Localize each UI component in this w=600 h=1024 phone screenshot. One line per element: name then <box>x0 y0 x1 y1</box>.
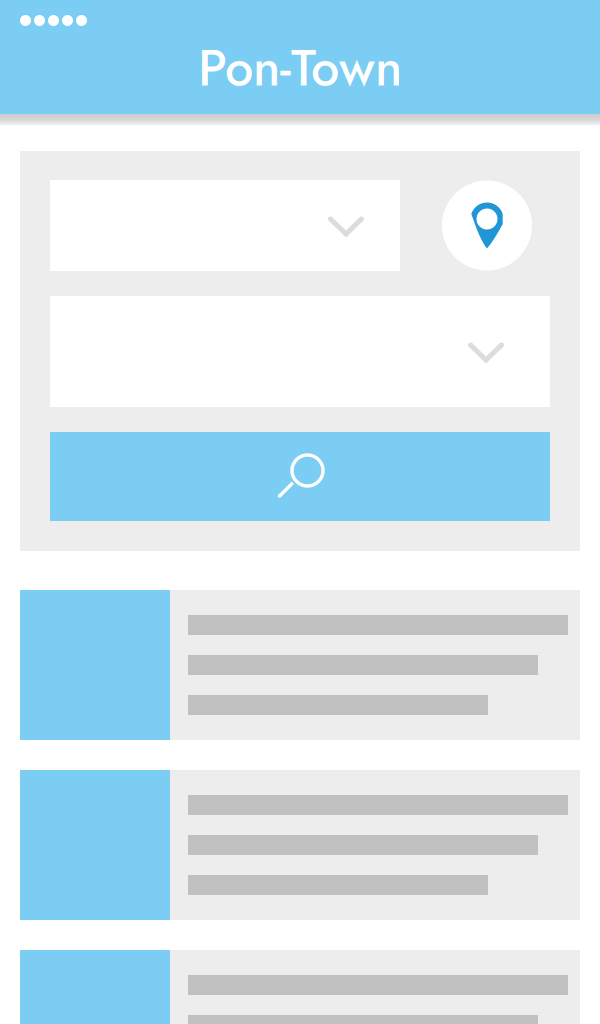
button[interactable]: Use current location <box>442 180 532 270</box>
button[interactable]: Search <box>50 432 550 521</box>
button[interactable] <box>20 590 580 740</box>
button[interactable] <box>20 950 580 1024</box>
button[interactable] <box>20 770 580 920</box>
staticText: Pon-Town <box>198 31 402 105</box>
